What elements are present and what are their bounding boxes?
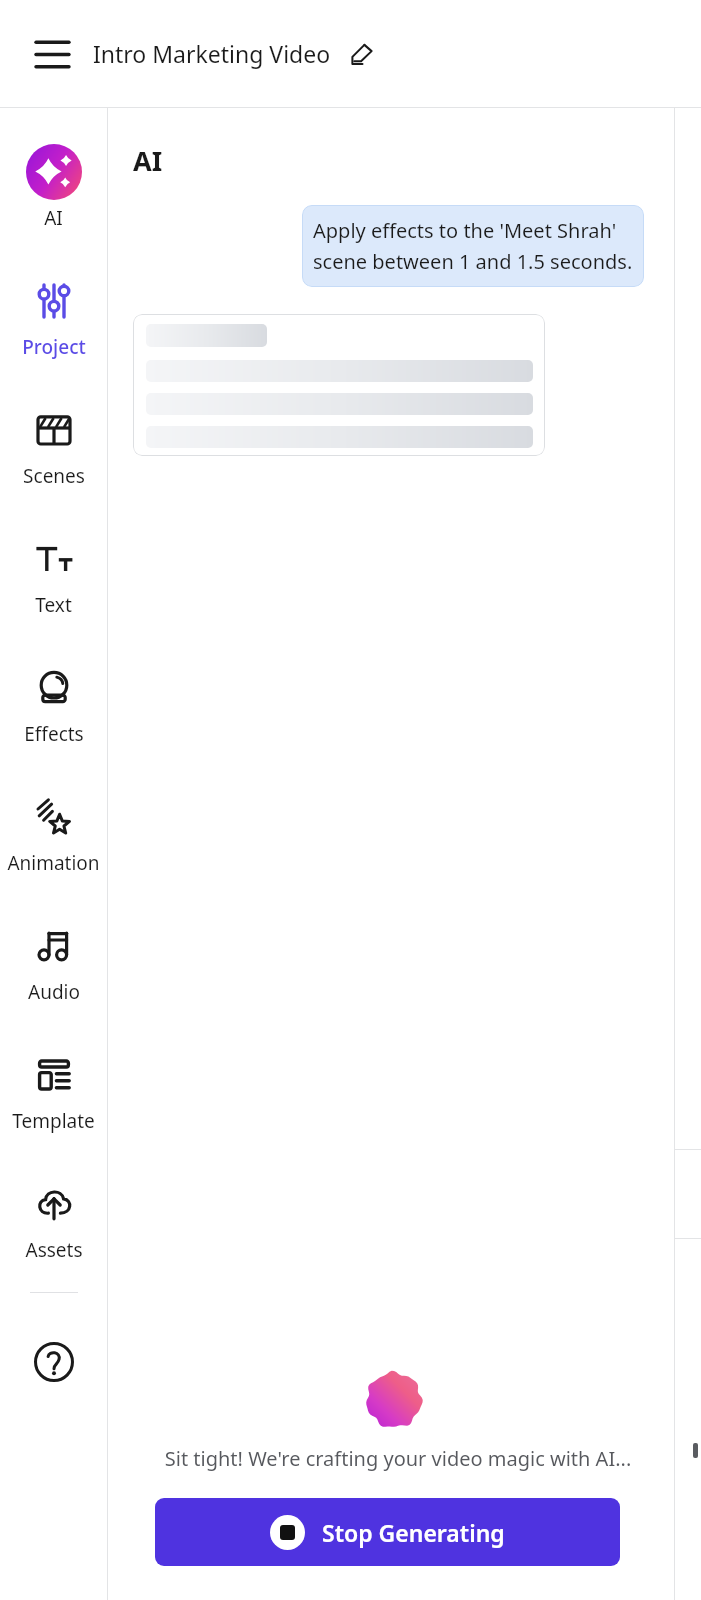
button[interactable]: Apply effects to the 'Meet Shrah' scene … [302, 205, 644, 287]
button[interactable]: Scenes [0, 402, 107, 489]
button[interactable]: Animation [0, 789, 107, 876]
button[interactable]: Assets [0, 1176, 107, 1263]
staticText: Template [12, 1108, 95, 1134]
button[interactable]: Help [27, 1335, 81, 1389]
button[interactable]: Template [0, 1047, 107, 1134]
staticText: Assets [25, 1237, 83, 1263]
button[interactable]: Stop Generating [155, 1498, 620, 1566]
button[interactable]: Project [0, 273, 107, 360]
staticText: Sit tight! We're crafting your video mag… [150, 1445, 646, 1472]
staticText: Intro Marketing Video [93, 38, 331, 69]
staticText: Audio [28, 979, 80, 1005]
staticText: Stop Generating [322, 1517, 505, 1548]
staticText: AI [44, 205, 63, 231]
button[interactable]: Audio [0, 918, 107, 1005]
staticText: Animation [7, 850, 100, 876]
button[interactable]: Rename project [341, 33, 383, 75]
button[interactable]: Text [0, 531, 107, 618]
staticText: Apply effects to the 'Meet Shrah' scene … [313, 217, 633, 275]
staticText: AI [133, 142, 163, 179]
staticText: Text [35, 592, 72, 618]
button[interactable]: Menu [20, 22, 84, 86]
staticText: Scenes [23, 463, 85, 489]
staticText: Project [22, 334, 86, 360]
button[interactable]: Effects [0, 660, 107, 747]
staticText: Effects [24, 721, 84, 747]
button[interactable]: AI [0, 144, 107, 231]
